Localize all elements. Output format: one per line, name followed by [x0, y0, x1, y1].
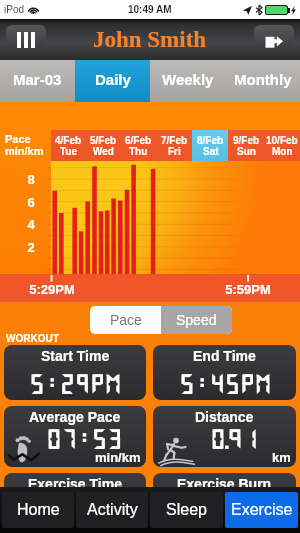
button[interactable]: Exercise Time [4, 473, 146, 533]
button[interactable]: Share [254, 25, 294, 55]
staticText: Wed [93, 146, 114, 157]
staticText: Distance [195, 409, 254, 425]
staticText: John Smith [93, 27, 207, 52]
staticText: iPod [4, 4, 25, 15]
button[interactable]: Sleep [150, 492, 223, 528]
staticText: Weekly [162, 71, 214, 88]
button[interactable]: 10/Feb [264, 130, 300, 161]
staticText: Fri [168, 146, 181, 157]
staticText: Average Pace [29, 409, 121, 425]
staticText: 4/Feb [55, 135, 82, 146]
staticText: 5:29PM [27, 282, 77, 297]
staticText: WORKOUT [6, 333, 59, 344]
button[interactable]: 5/Feb [86, 130, 121, 161]
button[interactable]: 6/Feb [121, 130, 156, 161]
button[interactable]: End Time [153, 345, 296, 400]
button[interactable]: Exercise [225, 492, 298, 528]
staticText: 6 [26, 195, 36, 210]
staticText: Activity [87, 501, 138, 519]
staticText: End Time [193, 348, 256, 364]
button[interactable]: Start Time [4, 345, 146, 400]
button[interactable]: 4/Feb [51, 130, 86, 161]
staticText: 4 [26, 217, 36, 232]
button[interactable]: Speed [161, 306, 232, 334]
staticText: km [272, 450, 291, 465]
button[interactable]: Daily [75, 60, 150, 102]
button[interactable]: Home [2, 492, 74, 528]
button[interactable]: 7/Feb [156, 130, 192, 161]
staticText: Sat [203, 146, 219, 157]
staticText: 07:53 [46, 426, 123, 451]
staticText: 5/Feb [90, 135, 117, 146]
button[interactable]: 9/Feb [228, 130, 264, 161]
staticText: Mon [272, 146, 293, 157]
staticText: Sun [237, 146, 256, 157]
staticText: 10/Feb [266, 135, 298, 146]
staticText: 5:45PM [179, 371, 271, 396]
button[interactable]: Weekly [150, 60, 225, 102]
button[interactable]: Monthly [225, 60, 300, 102]
staticText: Exercise Time [28, 476, 122, 492]
staticText: 6/Feb [125, 135, 152, 146]
staticText: min/km [95, 450, 141, 465]
staticText: Pace [110, 312, 142, 328]
staticText: Mar-03 [13, 71, 62, 88]
staticText: Exercise Burn [177, 476, 272, 492]
button[interactable]: Activity [76, 492, 148, 528]
staticText: Daily [95, 71, 131, 88]
button[interactable]: Exercise Burn [153, 473, 296, 533]
staticText: Pace [5, 133, 31, 145]
staticText: 0.91 [210, 426, 258, 451]
staticText: min/km [5, 145, 44, 157]
button[interactable]: Average Pace [4, 406, 146, 467]
staticText: 7/Feb [161, 135, 188, 146]
staticText: Sleep [166, 501, 207, 519]
staticText: 2 [26, 240, 36, 255]
staticText: Tue [60, 146, 78, 157]
button[interactable]: Pace [90, 306, 161, 334]
button[interactable]: Mar-03 [0, 60, 75, 102]
staticText: Exercise [231, 501, 293, 519]
button[interactable]: 8/Feb [192, 130, 228, 161]
staticText: Speed [176, 312, 217, 328]
staticText: Thu [129, 146, 148, 157]
staticText: 8 [26, 172, 36, 187]
staticText: Home [17, 501, 60, 519]
staticText: 9/Feb [233, 135, 260, 146]
staticText: 10:49 AM [128, 4, 172, 15]
button[interactable]: Distance [153, 406, 296, 467]
staticText: 5:29PM [29, 371, 121, 396]
staticText: 8/Feb [197, 135, 224, 146]
staticText: 5:59PM [223, 282, 273, 297]
button[interactable]: Menu [6, 25, 46, 55]
staticText: Monthly [234, 71, 292, 88]
staticText: Start Time [41, 348, 110, 364]
